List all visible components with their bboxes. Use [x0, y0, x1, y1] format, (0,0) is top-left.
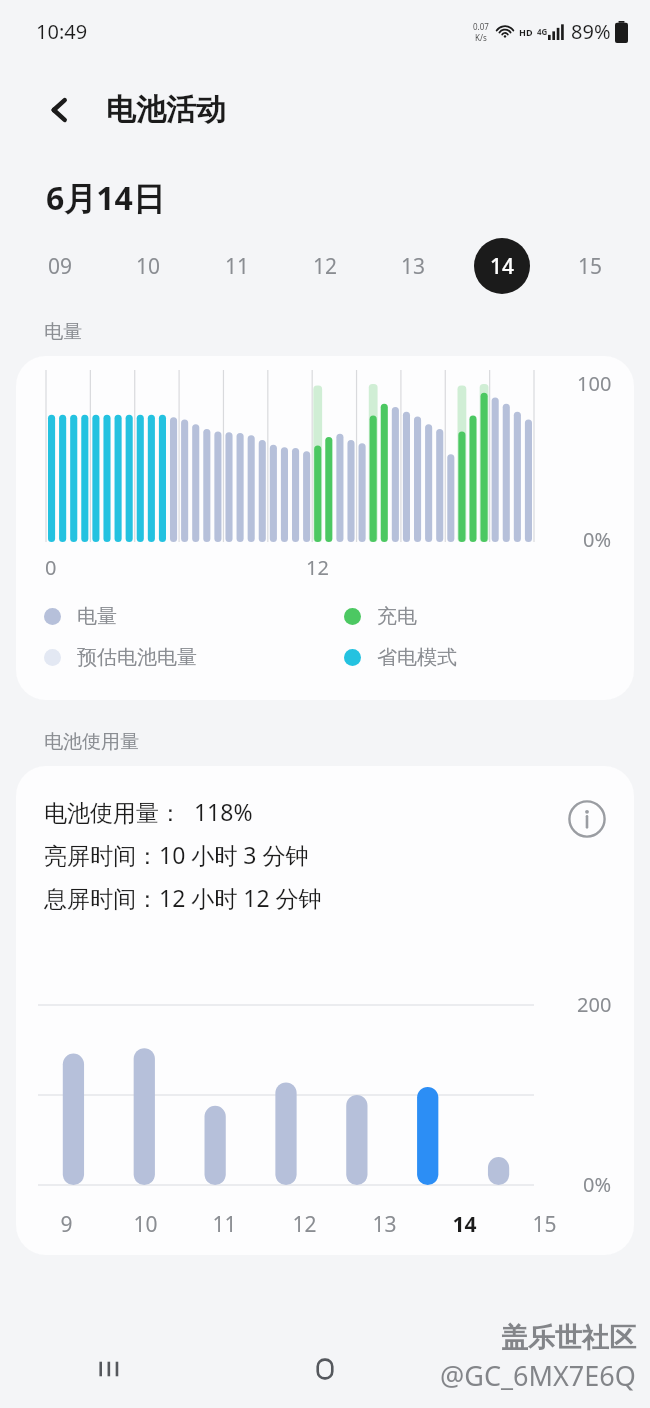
staticText: 0 [45, 554, 57, 581]
staticText: 电池使用量 [44, 730, 139, 754]
button[interactable]: 09 [32, 238, 88, 294]
staticText: 电量 [77, 604, 117, 629]
staticText: 省电模式 [377, 645, 457, 670]
button[interactable]: 100 [16, 356, 634, 700]
staticText: 100 [577, 370, 612, 397]
staticText: 9 [60, 1210, 73, 1239]
button[interactable]: 10 [120, 238, 176, 294]
button[interactable]: Home [216, 1330, 433, 1408]
button[interactable]: 电池使用量： 118% [16, 766, 634, 1255]
staticText: HD [519, 26, 533, 38]
staticText: 12 [306, 554, 329, 581]
staticText: 0.07 [473, 21, 489, 32]
staticText: 11 [225, 252, 250, 281]
staticText: 充电 [377, 604, 417, 629]
staticText: 15 [578, 252, 603, 281]
staticText: 200 [577, 991, 612, 1018]
staticText: 89% [571, 18, 611, 45]
button[interactable]: 15 [562, 238, 618, 294]
button[interactable]: 12 [297, 238, 353, 294]
staticText: 09 [48, 252, 73, 281]
button[interactable]: 11 [209, 238, 265, 294]
staticText: 预估电池电量 [77, 645, 197, 670]
staticText: 13 [401, 252, 426, 281]
staticText: 11 [212, 1210, 237, 1239]
staticText: 息屏时间：12 小时 12 分钟 [44, 882, 322, 913]
staticText: 电量 [44, 320, 82, 344]
staticText: 4G [537, 26, 548, 37]
staticText: @GC_6MX7E6Q [440, 1357, 636, 1394]
button[interactable]: Info [564, 796, 610, 842]
staticText: 6月14日 [46, 176, 165, 220]
button[interactable]: 14 [474, 238, 530, 294]
staticText: 12 [313, 252, 338, 281]
staticText: 电池使用量： 118% [44, 796, 253, 827]
button[interactable]: 13 [385, 238, 441, 294]
staticText: 14 [490, 252, 515, 281]
staticText: 10:49 [36, 18, 88, 45]
staticText: 电池活动 [106, 91, 226, 129]
staticText: 15 [532, 1210, 557, 1239]
staticText: 10 [136, 252, 161, 281]
button[interactable]: Back [433, 1330, 650, 1408]
staticText: 14 [452, 1210, 477, 1239]
staticText: 13 [372, 1210, 397, 1239]
staticText: 10 [133, 1210, 158, 1239]
staticText: 盖乐世社区 [501, 1321, 636, 1355]
button[interactable]: Back [34, 84, 86, 136]
staticText: 亮屏时间：10 小时 3 分钟 [44, 839, 309, 870]
staticText: K/s [475, 32, 487, 43]
staticText: 0% [583, 1171, 612, 1198]
staticText: 0% [583, 526, 612, 553]
staticText: 12 [292, 1210, 317, 1239]
button[interactable]: Recents [0, 1330, 216, 1408]
